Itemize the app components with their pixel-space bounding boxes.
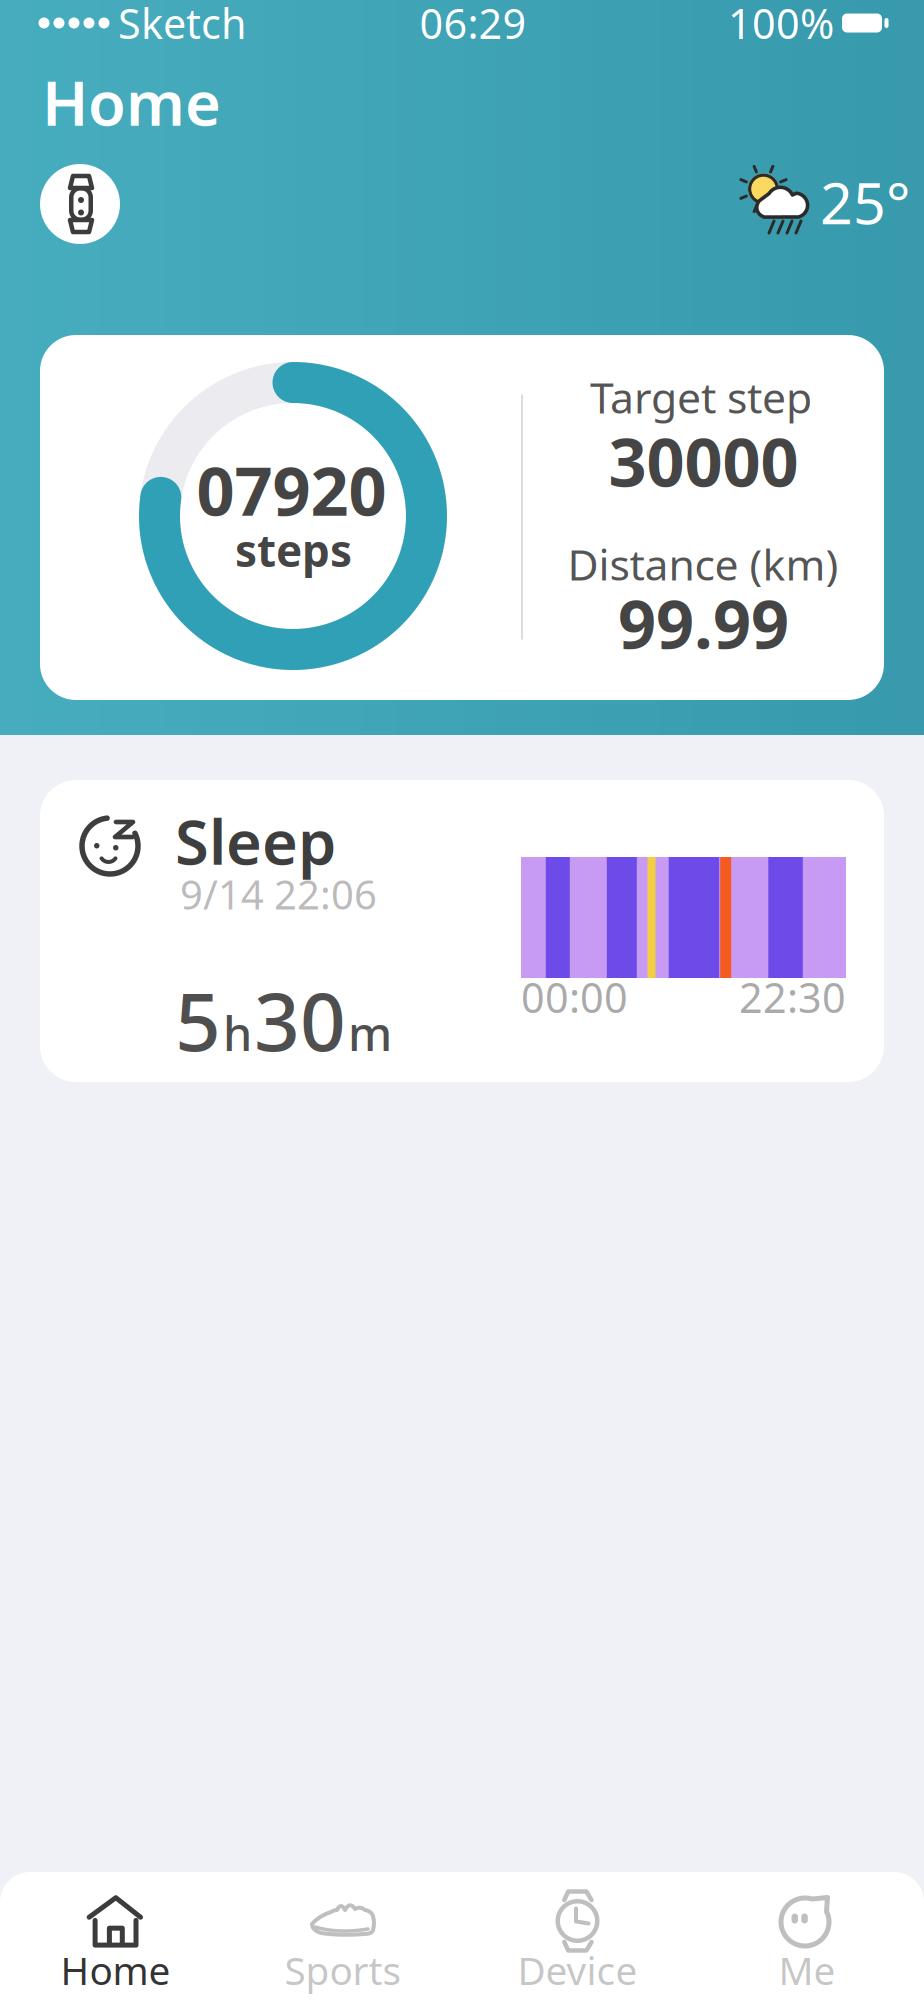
staticText: 99.99: [618, 579, 789, 667]
staticText: 100%: [728, 0, 834, 50]
staticText: Home: [42, 61, 221, 143]
staticText: 07920: [196, 446, 386, 534]
staticText: Distance (km): [567, 536, 838, 592]
staticText: 9/14 22:06: [180, 867, 377, 920]
staticText: 5: [175, 967, 221, 1073]
staticText: steps: [235, 521, 352, 579]
staticText: 30: [254, 967, 346, 1073]
button[interactable]: Device: [467, 1872, 687, 2000]
staticText: Home: [60, 1944, 170, 1996]
staticText: 22:30: [739, 970, 846, 1024]
staticText: 25°: [820, 164, 911, 240]
button[interactable]: My band: [40, 164, 120, 244]
staticText: Sketch: [118, 0, 247, 50]
staticText: 30000: [609, 417, 799, 505]
staticText: Sports: [284, 1944, 401, 1996]
button[interactable]: Me: [697, 1872, 917, 2000]
staticText: Device: [517, 1944, 637, 1996]
button[interactable]: Sleep summary: [40, 780, 884, 1082]
staticText: Sleep: [175, 800, 336, 882]
staticText: m: [348, 1002, 392, 1064]
staticText: 00:00: [521, 970, 628, 1024]
staticText: Target step: [590, 369, 812, 425]
staticText: h: [223, 1002, 252, 1064]
button[interactable]: Home: [5, 1872, 225, 2000]
button[interactable]: Sports: [233, 1872, 453, 2000]
staticText: 06:29: [419, 0, 526, 50]
staticText: Me: [778, 1944, 835, 1996]
button[interactable]: Steps summary: [40, 335, 884, 700]
